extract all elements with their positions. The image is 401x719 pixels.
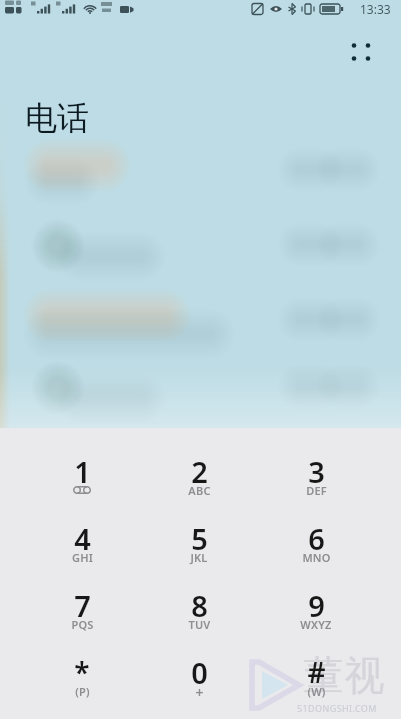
staticText: TUV [188, 617, 211, 632]
staticText: JKL [190, 550, 208, 565]
staticText: GHI [72, 550, 93, 565]
button[interactable]: 9 [261, 586, 371, 648]
staticText: 13:33 [360, 1, 391, 17]
staticText: 电话 [25, 98, 89, 138]
staticText: 5 [191, 519, 208, 551]
staticText: DEF [306, 483, 327, 498]
button[interactable]: # [261, 653, 371, 715]
button[interactable]: More options [340, 31, 381, 72]
button[interactable]: 3 [261, 452, 371, 514]
button[interactable]: 0 [144, 653, 254, 715]
staticText: # [307, 653, 326, 685]
button[interactable]: 2 [144, 452, 254, 514]
staticText: MNO [302, 550, 331, 565]
staticText: 2 [191, 452, 208, 484]
staticText: 0 [191, 653, 208, 685]
staticText: 9 [308, 586, 325, 618]
button[interactable]: 5 [144, 519, 254, 581]
staticText: + [195, 683, 204, 699]
button[interactable]: 8 [144, 586, 254, 648]
staticText: 3 [308, 452, 325, 484]
button[interactable]: * [27, 653, 137, 715]
button[interactable]: 4 [27, 519, 137, 581]
staticText: 7 [74, 586, 91, 618]
staticText: (P) [75, 684, 90, 699]
staticText: 8 [191, 586, 208, 618]
staticText: 董视 [303, 650, 385, 700]
staticText: PQS [71, 617, 94, 632]
staticText: 6 [308, 519, 325, 551]
button[interactable]: 6 [261, 519, 371, 581]
button[interactable]: 1 [27, 452, 137, 514]
staticText: ABC [188, 483, 211, 498]
button[interactable]: 7 [27, 586, 137, 648]
staticText: 1 [74, 452, 91, 484]
staticText: WXYZ [300, 617, 332, 632]
staticText: 51DONGSHI.COM [297, 702, 377, 714]
staticText: * [74, 653, 90, 685]
staticText: 4 [74, 519, 91, 551]
staticText: (W) [307, 684, 326, 699]
